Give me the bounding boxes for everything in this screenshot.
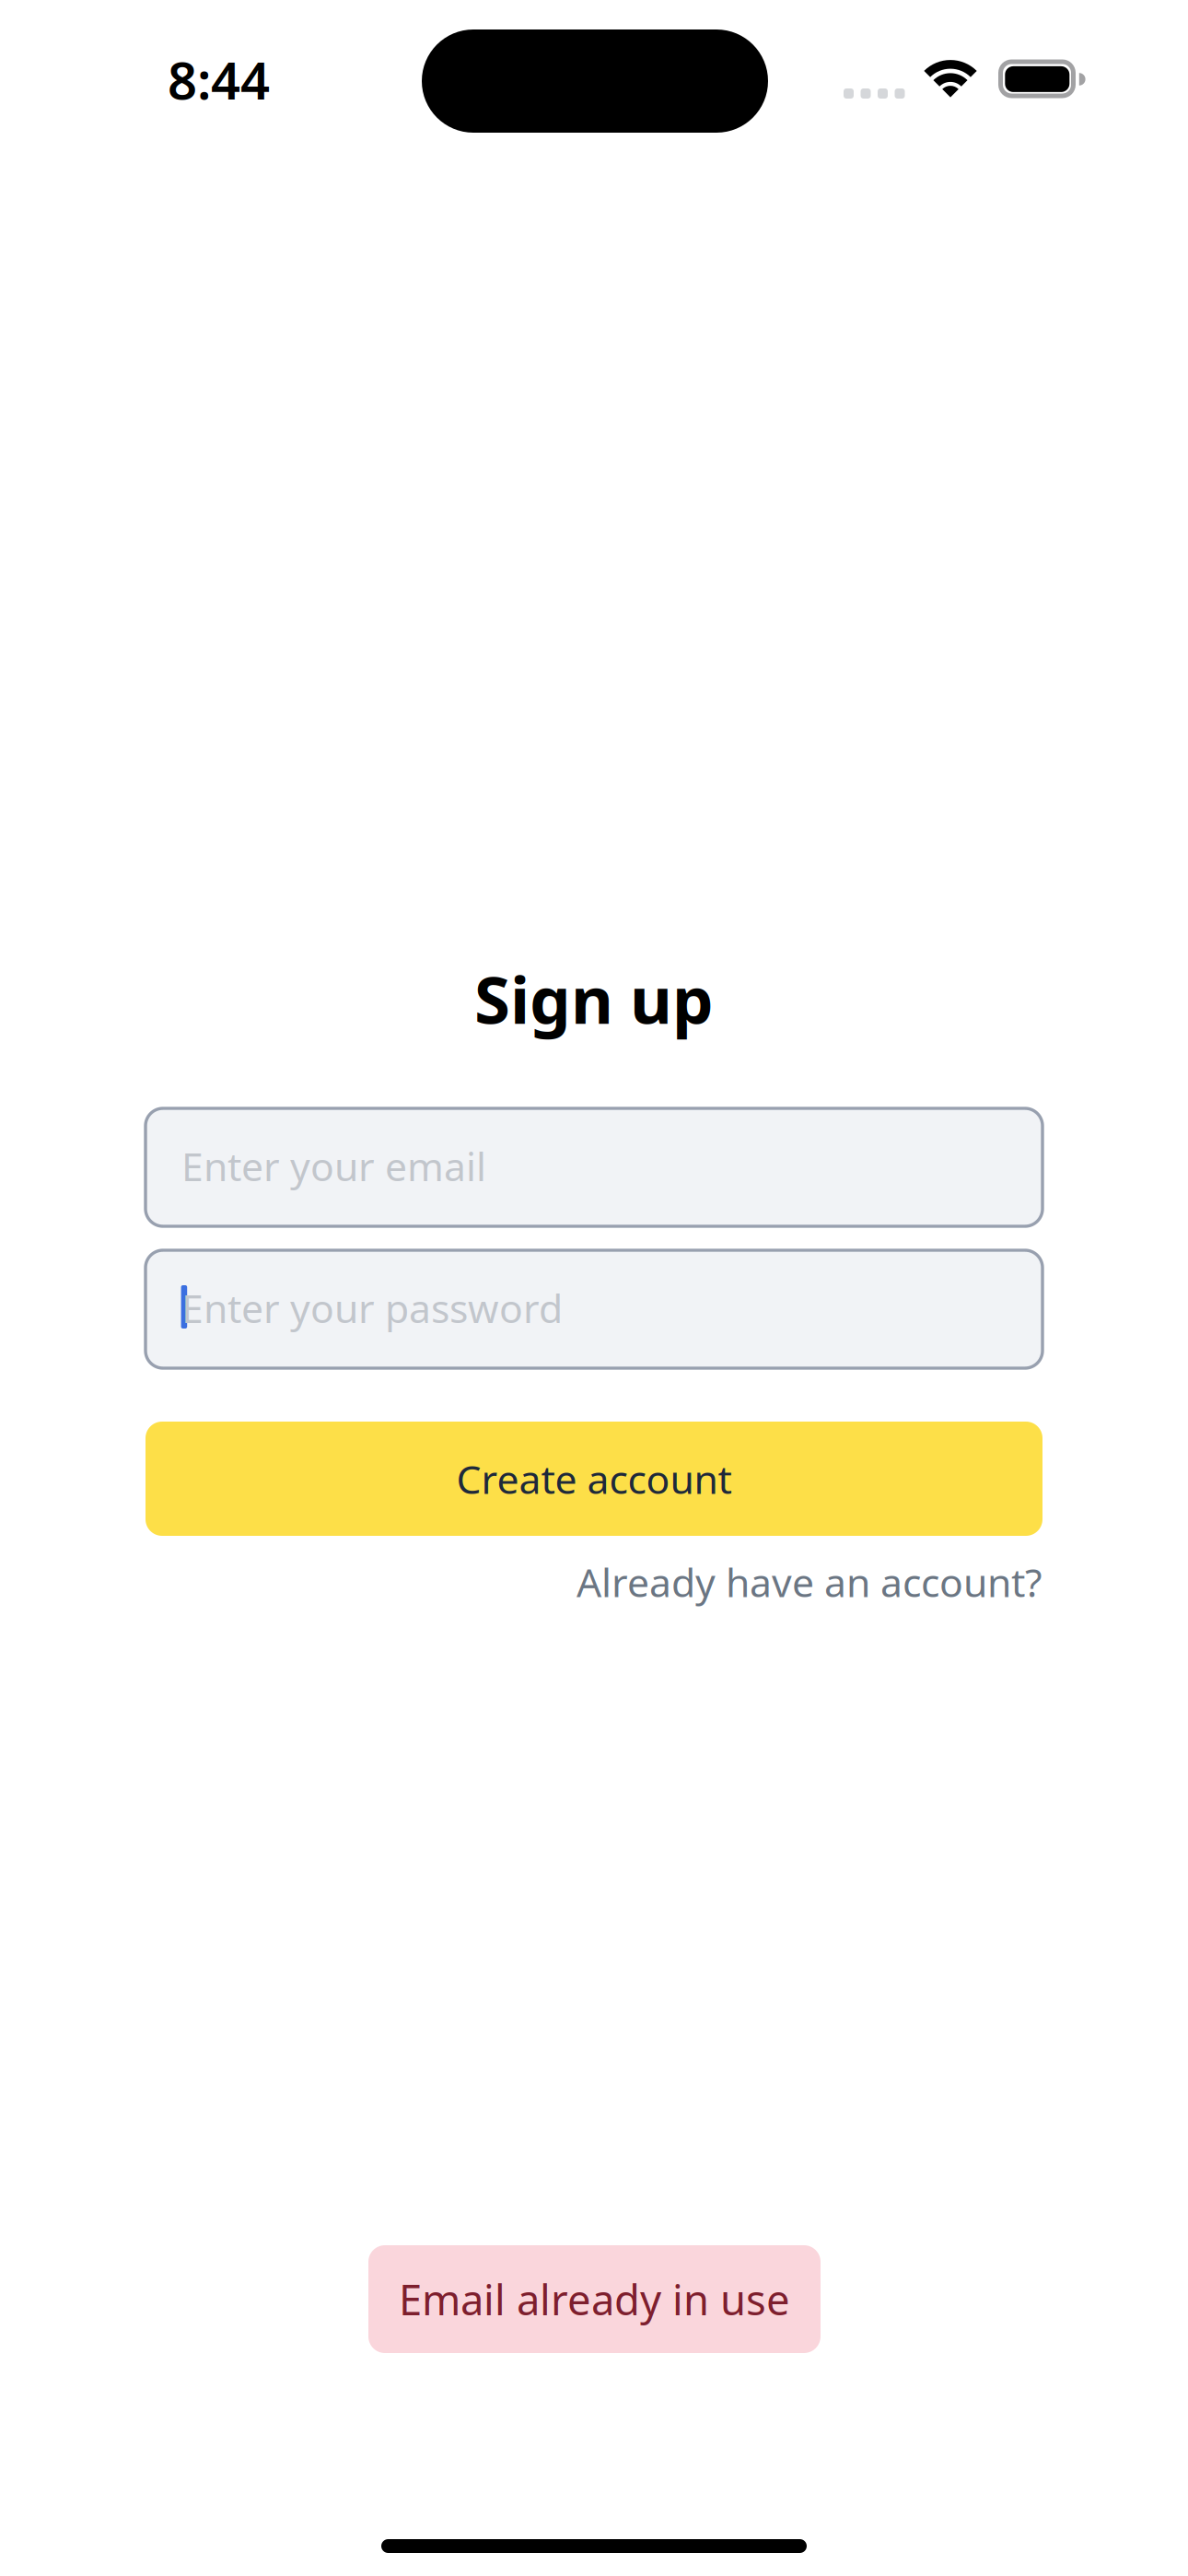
staticText: 8:44	[168, 45, 270, 114]
staticText: Sign up	[474, 955, 714, 1042]
staticText: Email already in use	[399, 2271, 790, 2327]
button[interactable]: Already have an account?	[146, 1554, 1042, 1610]
button[interactable]: Enter your email	[146, 1108, 1042, 1226]
staticText: Enter your email	[181, 1140, 486, 1192]
button[interactable]: Create account	[146, 1422, 1042, 1536]
staticText: Create account	[456, 1453, 732, 1505]
staticText: Enter your password	[181, 1282, 563, 1334]
staticText: Already have an account?	[577, 1556, 1042, 1608]
button[interactable]: Enter your password	[146, 1250, 1042, 1368]
